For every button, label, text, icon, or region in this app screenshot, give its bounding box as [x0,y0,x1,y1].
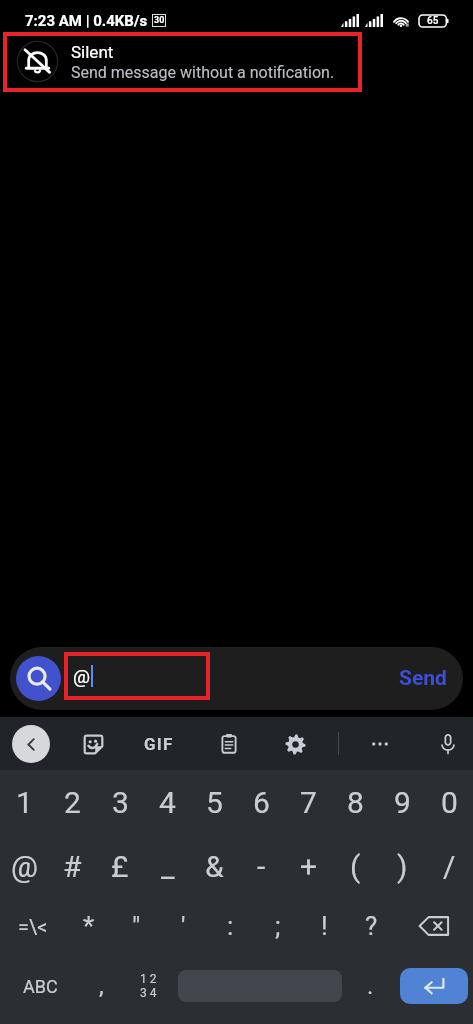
button[interactable]: £ [96,835,144,897]
button[interactable]: 1 [0,770,48,835]
staticText: @ [73,665,91,687]
button[interactable]: ABC [0,958,80,1014]
button[interactable]: / [426,835,473,897]
button[interactable]: ' [160,897,207,955]
staticText: # [63,849,82,884]
button[interactable]: Send [383,647,463,710]
staticText: =\< [18,915,48,938]
staticText: ) [397,849,408,884]
button[interactable]: ) [379,835,426,897]
staticText: & [205,849,224,884]
button[interactable]: More options [361,725,399,763]
staticText: - [257,849,266,884]
button[interactable]: @ [64,652,210,700]
staticText: ; [275,911,281,941]
button[interactable]: ? [348,897,395,955]
button[interactable]: Enter [400,968,468,1004]
staticText: Send [399,666,447,691]
button[interactable]: & [191,835,238,897]
button[interactable]: 5 [191,770,238,835]
button[interactable]: Stickers [74,725,112,763]
button[interactable]: 6 [238,770,285,835]
staticText: 7:23 AM | 0.4KB/s [25,12,148,30]
staticText: 2 [64,785,81,820]
button[interactable]: * [65,897,113,955]
staticText: _ [161,849,175,884]
button[interactable]: Voice input [429,725,467,763]
staticText: Silent [71,42,114,62]
button[interactable]: Search [16,656,61,701]
staticText: 0 [441,785,458,820]
staticText: 5 [206,785,223,820]
button[interactable]: 9 [379,770,426,835]
staticText: 8 [347,785,364,820]
button[interactable]: , [80,958,122,1014]
staticText: " [132,911,141,941]
staticText: 9 [394,785,411,820]
staticText: @ [11,849,38,884]
staticText: / [443,849,456,884]
button[interactable]: =\< [0,897,65,955]
staticText: 3 [112,785,129,820]
button[interactable]: Settings [276,725,314,763]
staticText: ? [365,911,378,941]
staticText: 7 [300,785,317,820]
button[interactable]: 7 [285,770,332,835]
button[interactable]: 3 [96,770,144,835]
staticText: 1 2 [140,972,157,986]
button[interactable]: . [346,958,395,1014]
button[interactable]: # [48,835,96,897]
staticText: 6 [253,785,270,820]
staticText: + [300,849,318,884]
staticText: , [99,972,104,1000]
button[interactable]: GIF [140,725,178,763]
button[interactable]: _ [144,835,191,897]
staticText: ' [181,911,186,941]
staticText: : [227,911,234,941]
button[interactable]: 2 [48,770,96,835]
button[interactable]: ; [254,897,301,955]
button[interactable]: 8 [332,770,379,835]
staticText: * [83,911,95,941]
button[interactable]: ! [301,897,348,955]
staticText: ( [350,849,361,884]
staticText: GIF [144,734,174,754]
staticText: 65 [427,15,439,27]
staticText: Send message without a notification. [71,63,335,82]
button[interactable]: Clipboard [210,725,248,763]
button[interactable]: 0 [426,770,473,835]
staticText: 1 [16,785,33,820]
staticText: 3 4 [140,986,157,1000]
staticText: ABC [23,976,58,997]
staticText: . [367,972,374,1000]
button[interactable]: : [207,897,254,955]
staticText: ! [321,911,328,941]
button[interactable]: @ [0,835,48,897]
button[interactable]: + [285,835,332,897]
button[interactable]: ( [332,835,379,897]
staticText: £ [111,849,129,884]
button[interactable]: 1 2 [122,958,174,1014]
button[interactable]: Back [12,725,50,763]
button[interactable]: 4 [144,770,191,835]
button[interactable]: Silent [3,32,362,92]
staticText: 4 [159,785,176,820]
button[interactable]: " [113,897,160,955]
button[interactable]: - [238,835,285,897]
staticText: 30 [154,15,165,26]
button[interactable]: Backspace [395,897,473,955]
